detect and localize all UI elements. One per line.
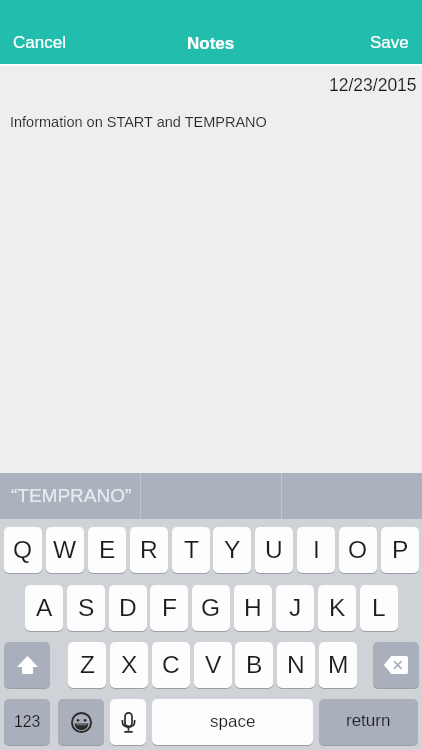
- staticText: “TEMPRANO”: [11, 485, 132, 506]
- button[interactable]: “TEMPRANO”: [0, 473, 140, 519]
- button[interactable]: K: [318, 585, 356, 631]
- button[interactable]: S: [67, 585, 105, 631]
- button[interactable]: Shift: [4, 642, 50, 688]
- button[interactable]: return: [319, 699, 418, 745]
- staticText: Save: [370, 33, 409, 52]
- staticText: 123: [14, 713, 41, 731]
- staticText: 12/23/2015: [329, 75, 417, 95]
- staticText: T: [184, 536, 199, 563]
- button[interactable]: Backspace: [373, 642, 419, 688]
- staticText: B: [246, 651, 263, 678]
- button[interactable]: L: [360, 585, 398, 631]
- button[interactable]: F: [150, 585, 188, 631]
- button[interactable]: O: [339, 527, 377, 573]
- staticText: H: [244, 594, 262, 621]
- staticText: A: [36, 594, 53, 621]
- button[interactable]: H: [234, 585, 272, 631]
- staticText: W: [53, 536, 77, 563]
- button[interactable]: X: [110, 642, 148, 688]
- staticText: G: [201, 594, 221, 621]
- button[interactable]: W: [46, 527, 84, 573]
- staticText: space: [210, 712, 256, 731]
- staticText: Cancel: [13, 33, 66, 52]
- button[interactable]: G: [192, 585, 230, 631]
- staticText: Notes: [187, 34, 235, 53]
- staticText: return: [346, 711, 391, 730]
- staticText: R: [140, 536, 158, 563]
- staticText: K: [329, 594, 346, 621]
- button[interactable]: 123: [4, 699, 50, 745]
- button[interactable]: J: [276, 585, 314, 631]
- button[interactable]: E: [88, 527, 126, 573]
- button[interactable]: Emoji keyboard: [58, 699, 104, 745]
- staticText: M: [328, 651, 349, 678]
- staticText: Z: [80, 651, 95, 678]
- staticText: F: [162, 594, 177, 621]
- staticText: P: [392, 536, 409, 563]
- button[interactable]: T: [172, 527, 210, 573]
- staticText: Information on START and TEMPRANO: [10, 114, 267, 130]
- button[interactable]: Y: [213, 527, 251, 573]
- button[interactable]: Q: [4, 527, 42, 573]
- staticText: C: [162, 651, 180, 678]
- button[interactable]: P: [381, 527, 419, 573]
- staticText: D: [119, 594, 137, 621]
- staticText: U: [265, 536, 283, 563]
- button[interactable]: space: [152, 699, 313, 745]
- staticText: L: [372, 594, 386, 621]
- staticText: Q: [13, 536, 33, 563]
- button[interactable]: Save: [364, 31, 415, 54]
- staticText: E: [99, 536, 116, 563]
- staticText: X: [121, 651, 138, 678]
- button[interactable]: V: [194, 642, 232, 688]
- button[interactable]: Cancel: [7, 31, 72, 54]
- button[interactable]: U: [255, 527, 293, 573]
- staticText: S: [78, 594, 95, 621]
- button[interactable]: M: [319, 642, 357, 688]
- button[interactable]: B: [235, 642, 273, 688]
- staticText: I: [313, 536, 320, 563]
- staticText: J: [289, 594, 302, 621]
- button[interactable]: A: [25, 585, 63, 631]
- button[interactable]: Z: [68, 642, 106, 688]
- button[interactable]: Dictation: [110, 699, 146, 745]
- staticText: V: [205, 651, 222, 678]
- button[interactable]: R: [130, 527, 168, 573]
- staticText: Y: [224, 536, 241, 563]
- button[interactable]: I: [297, 527, 335, 573]
- button[interactable]: D: [109, 585, 147, 631]
- button[interactable]: C: [152, 642, 190, 688]
- staticText: O: [348, 536, 368, 563]
- staticText: N: [287, 651, 305, 678]
- button[interactable]: N: [277, 642, 315, 688]
